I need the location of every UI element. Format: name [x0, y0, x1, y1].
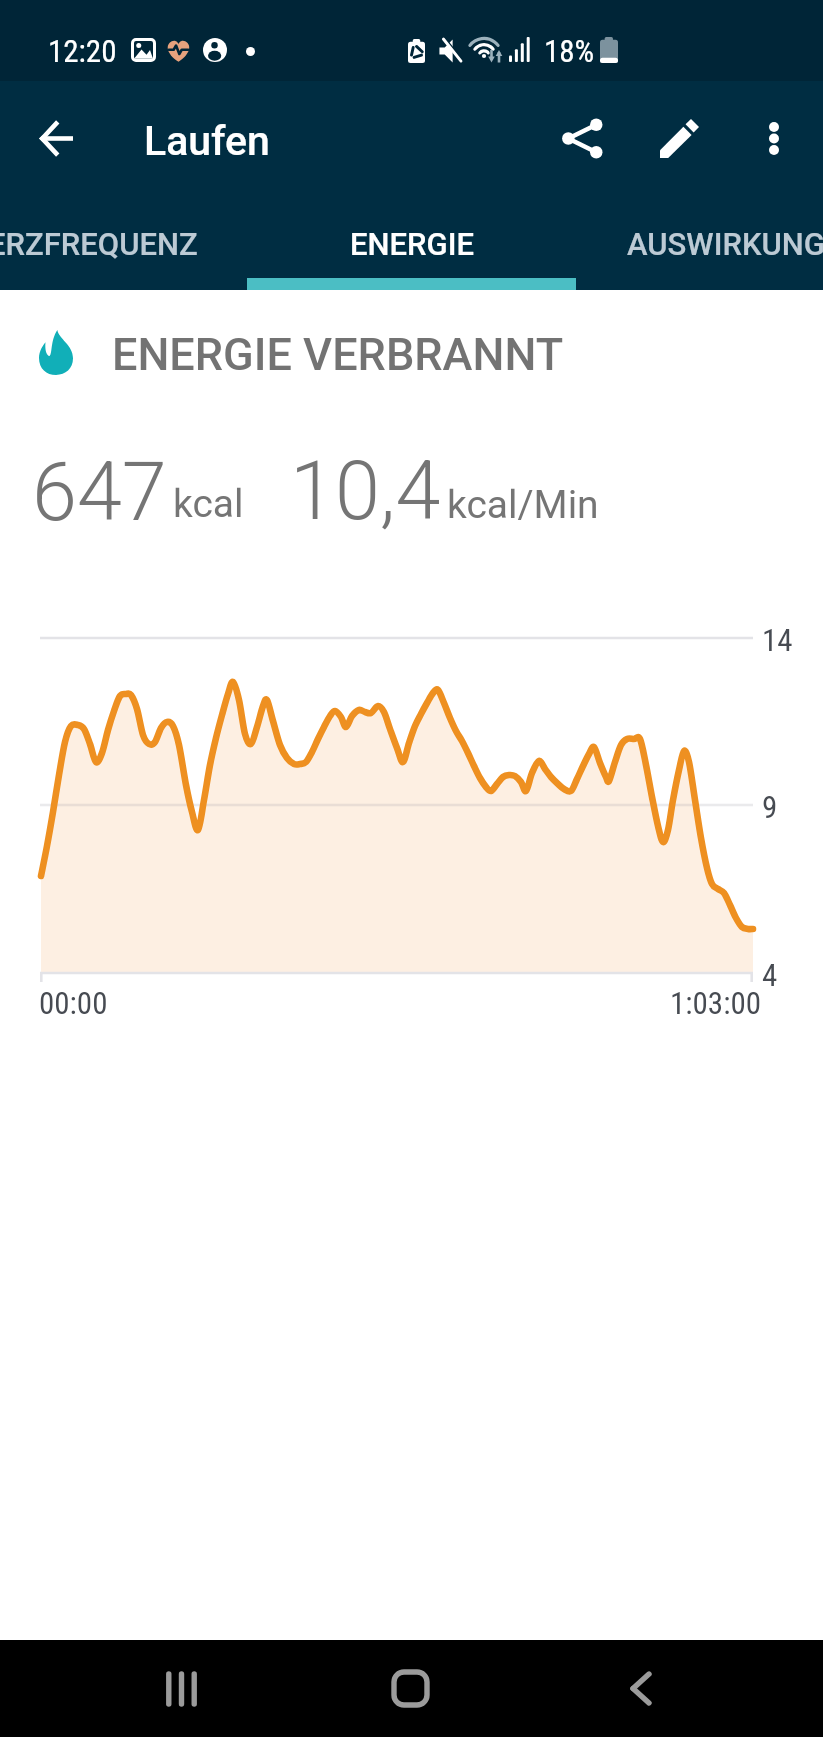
staticText: kcal: [173, 481, 244, 527]
staticText: kcal/Min: [447, 482, 599, 528]
staticText: 9: [762, 789, 778, 825]
staticText: Laufen: [144, 117, 270, 165]
button[interactable]: Back: [586, 1649, 696, 1728]
staticText: AUSWIRKUNGEN: [627, 226, 823, 262]
staticText: HERZFREQUENZ: [0, 226, 198, 262]
button[interactable]: HERZFREQUENZ: [0, 195, 247, 290]
staticText: ENERGIE VERBRANNT: [112, 328, 564, 381]
staticText: ENERGIE: [350, 226, 474, 262]
staticText: 12:20: [48, 33, 117, 69]
button[interactable]: Back: [14, 92, 98, 184]
button[interactable]: Share: [540, 92, 624, 184]
button[interactable]: Home: [355, 1649, 465, 1728]
button[interactable]: AUSWIRKUNGEN: [576, 195, 823, 290]
button[interactable]: ENERGIE: [247, 195, 576, 290]
button[interactable]: More options: [732, 92, 816, 184]
button[interactable]: Edit: [637, 92, 721, 184]
staticText: 1:03:00: [670, 985, 761, 1021]
staticText: 10,4: [290, 444, 441, 539]
staticText: 00:00: [39, 985, 108, 1021]
staticText: 14: [762, 622, 793, 658]
staticText: 647: [32, 445, 167, 540]
staticText: 18%: [544, 33, 595, 69]
staticText: 4: [762, 957, 778, 993]
button[interactable]: Recent apps: [126, 1649, 236, 1728]
